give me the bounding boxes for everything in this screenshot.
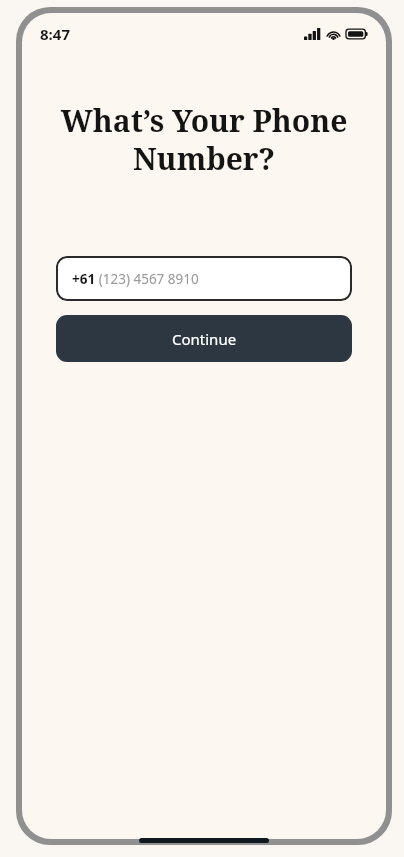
- button[interactable]: Continue: [56, 315, 352, 362]
- staticText: +61 (123) 4567 8910: [72, 270, 199, 288]
- staticText: 8:47: [40, 24, 70, 44]
- staticText: What’s Your Phone Number?: [48, 100, 360, 179]
- button[interactable]: +61 (123) 4567 8910: [56, 256, 352, 301]
- staticText: Continue: [172, 329, 237, 349]
